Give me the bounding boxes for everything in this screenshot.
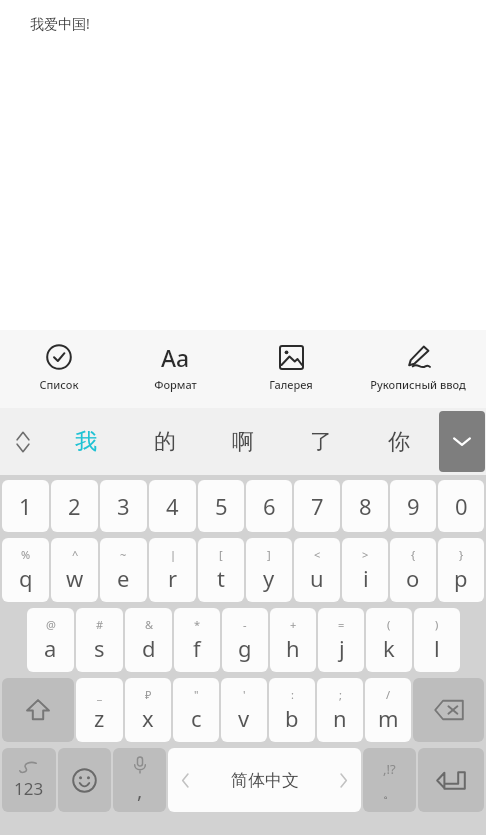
button[interactable]: 6: [246, 480, 292, 532]
button[interactable]: ": [173, 678, 219, 742]
button[interactable]: 4: [149, 480, 196, 532]
staticText: 4: [166, 491, 179, 521]
staticText: l: [434, 633, 440, 663]
staticText: p: [454, 563, 468, 593]
staticText: 了: [310, 428, 332, 456]
button[interactable]: |: [149, 538, 196, 602]
button[interactable]: <: [294, 538, 340, 602]
staticText: s: [94, 633, 105, 663]
button[interactable]: @: [27, 608, 74, 672]
staticText: i: [363, 563, 369, 593]
button[interactable]: ^: [51, 538, 98, 602]
button[interactable]: 的: [125, 408, 204, 475]
button[interactable]: Expand candidates: [0, 408, 46, 475]
staticText: &: [145, 617, 154, 632]
staticText: b: [285, 703, 299, 733]
button[interactable]: 7: [294, 480, 340, 532]
staticText: 2: [68, 491, 81, 521]
button[interactable]: 0: [438, 480, 484, 532]
staticText: ^: [72, 547, 79, 562]
staticText: z: [94, 703, 105, 733]
staticText: ): [435, 617, 439, 632]
button[interactable]: 1: [2, 480, 49, 532]
button[interactable]: Symbols 123: [2, 748, 56, 812]
button[interactable]: #: [76, 608, 123, 672]
staticText: Галерея: [269, 377, 313, 392]
button[interactable]: Emoji: [58, 748, 111, 812]
staticText: 3: [117, 491, 130, 521]
staticText: 的: [154, 428, 176, 456]
staticText: ;: [339, 687, 342, 702]
staticText: h: [286, 633, 300, 663]
button[interactable]: _: [76, 678, 123, 742]
button[interactable]: ;: [317, 678, 363, 742]
button[interactable]: ~: [100, 538, 147, 602]
button[interactable]: Hide keyboard: [439, 411, 485, 472]
button[interactable]: *: [174, 608, 220, 672]
button[interactable]: Backspace: [413, 678, 484, 742]
staticText: m: [378, 703, 399, 733]
button[interactable]: :: [269, 678, 315, 742]
button[interactable]: 2: [51, 480, 98, 532]
button[interactable]: Галерея: [233, 330, 349, 408]
staticText: f: [193, 633, 201, 663]
staticText: t: [217, 563, 225, 593]
staticText: ₽: [145, 687, 152, 702]
staticText: 8: [359, 491, 372, 521]
staticText: (: [387, 617, 391, 632]
staticText: y: [263, 563, 275, 593]
staticText: *: [194, 617, 201, 632]
button[interactable]: Punctuation: [363, 748, 416, 812]
staticText: 6: [263, 491, 276, 521]
button[interactable]: ': [221, 678, 267, 742]
staticText: w: [66, 563, 84, 593]
button[interactable]: Voice input and comma: [113, 748, 166, 812]
staticText: @: [46, 617, 56, 632]
button[interactable]: 8: [342, 480, 388, 532]
staticText: ': [243, 687, 246, 702]
button[interactable]: Список: [0, 330, 117, 408]
button[interactable]: (: [366, 608, 412, 672]
button[interactable]: =: [318, 608, 364, 672]
button[interactable]: -: [222, 608, 268, 672]
button[interactable]: Рукописный ввод: [349, 330, 486, 408]
staticText: _: [97, 687, 102, 702]
button[interactable]: 啊: [204, 408, 282, 475]
button[interactable]: 你: [360, 408, 438, 475]
button[interactable]: /: [365, 678, 411, 742]
button[interactable]: }: [438, 538, 484, 602]
staticText: %: [21, 547, 31, 562]
staticText: v: [238, 703, 250, 733]
button[interactable]: Shift: [2, 678, 74, 742]
button[interactable]: Enter: [418, 748, 484, 812]
staticText: a: [44, 633, 57, 663]
button[interactable]: ]: [246, 538, 292, 602]
button[interactable]: [: [198, 538, 244, 602]
button[interactable]: 3: [100, 480, 147, 532]
staticText: u: [310, 563, 324, 593]
staticText: /: [386, 687, 391, 702]
button[interactable]: >: [342, 538, 388, 602]
staticText: x: [142, 703, 154, 733]
button[interactable]: %: [2, 538, 49, 602]
button[interactable]: 了: [282, 408, 360, 475]
button[interactable]: +: [270, 608, 316, 672]
button[interactable]: {: [390, 538, 436, 602]
button[interactable]: 我: [46, 408, 125, 475]
button[interactable]: 简体中文: [168, 748, 361, 812]
button[interactable]: ₽: [125, 678, 171, 742]
staticText: ,: [137, 777, 143, 804]
staticText: Формат: [154, 377, 197, 392]
button[interactable]: Aa: [117, 330, 233, 408]
button[interactable]: ): [414, 608, 460, 672]
staticText: ~: [120, 547, 127, 562]
staticText: c: [191, 703, 202, 733]
button[interactable]: 5: [198, 480, 244, 532]
staticText: g: [238, 633, 252, 663]
button[interactable]: 9: [390, 480, 436, 532]
button[interactable]: &: [125, 608, 172, 672]
staticText: n: [333, 703, 347, 733]
staticText: [: [219, 547, 223, 562]
staticText: ": [194, 687, 199, 702]
staticText: =: [338, 617, 345, 632]
